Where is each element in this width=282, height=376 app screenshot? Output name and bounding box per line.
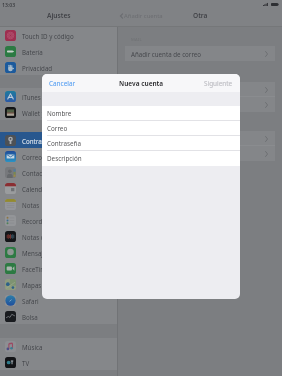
button[interactable]: Bolsa xyxy=(0,308,117,324)
button[interactable]: Contactos xyxy=(0,164,117,180)
staticText: Contactos xyxy=(22,169,52,177)
staticText: Ajustes xyxy=(47,11,71,20)
button[interactable]: Añadir cuenta de correo xyxy=(125,46,275,61)
staticText: Recordatorios xyxy=(22,217,63,225)
staticText: Añadir cuenta xyxy=(124,12,163,20)
button[interactable]: Mapas xyxy=(0,276,117,292)
button[interactable]: Música xyxy=(0,338,117,354)
staticText: Contraseña xyxy=(47,139,81,148)
staticText: Touch ID y código xyxy=(22,32,74,40)
button[interactable]: Safari xyxy=(0,292,117,308)
button[interactable]: Privacidad xyxy=(0,59,117,75)
staticText: Wallet y Apple Pay xyxy=(22,109,76,117)
staticText: Correo xyxy=(47,124,68,133)
button[interactable]: Descripción xyxy=(42,151,240,166)
staticText: Privacidad xyxy=(22,64,53,72)
staticText: FaceTime xyxy=(22,265,50,273)
staticText: Descripción xyxy=(47,154,82,163)
staticText: Nombre xyxy=(47,109,72,118)
staticText: Calendario xyxy=(22,185,54,193)
button[interactable]: Contraseña xyxy=(42,136,240,151)
staticText: Otra xyxy=(193,11,208,20)
button[interactable]: Siguiente xyxy=(197,75,240,92)
staticText: Añadir cuenta xyxy=(131,135,172,143)
button[interactable]: Cancelar xyxy=(42,75,83,92)
button[interactable]: Batería xyxy=(0,43,117,59)
staticText: Añadir cuenta xyxy=(131,150,172,158)
button[interactable]: Touch ID y código xyxy=(0,27,117,43)
staticText: Mensajes xyxy=(22,249,50,257)
staticText: Siguiente xyxy=(204,79,233,88)
button[interactable]: Mensajes xyxy=(0,244,117,260)
button[interactable]: Añadir cuenta xyxy=(125,131,275,146)
button[interactable]: Correo xyxy=(0,148,117,164)
button[interactable]: Notas xyxy=(0,196,117,212)
button[interactable]: TV xyxy=(0,354,117,370)
button[interactable]: Añadir cuenta xyxy=(125,146,275,161)
button[interactable]: Contraseñas y cuentas xyxy=(0,132,117,148)
staticText: Contraseñas y cuentas xyxy=(22,137,88,145)
button[interactable]: Correo xyxy=(42,121,240,136)
staticText: Notas de voz xyxy=(22,233,60,241)
button[interactable]: Notas de voz xyxy=(0,228,117,244)
staticText: Bolsa xyxy=(22,313,38,321)
button[interactable]: Calendario xyxy=(0,180,117,196)
staticText: CONTACTOS xyxy=(131,73,157,79)
button[interactable]: Wallet y Apple Pay xyxy=(0,104,117,120)
staticText: MAIL xyxy=(131,37,142,43)
button[interactable]: Back xyxy=(120,12,163,20)
button[interactable]: Añadir cuenta xyxy=(125,97,275,112)
staticText: TV xyxy=(22,359,30,367)
staticText: 13:03 xyxy=(2,1,16,8)
button[interactable]: Recordatorios xyxy=(0,212,117,228)
staticText: Correo xyxy=(22,153,42,161)
staticText: Notas xyxy=(22,201,40,209)
button[interactable]: Nombre xyxy=(42,106,240,121)
button[interactable]: iTunes Store y App Store xyxy=(0,88,117,104)
staticText: Cancelar xyxy=(49,79,76,88)
staticText: iTunes Store y App Store xyxy=(22,93,93,101)
staticText: Nueva cuenta xyxy=(119,79,164,88)
button[interactable]: FaceTime xyxy=(0,260,117,276)
staticText: Mapas xyxy=(22,281,42,289)
staticText: Añadir cuenta de correo xyxy=(131,50,202,58)
staticText: Música xyxy=(22,343,43,351)
button[interactable]: Añadir cuenta xyxy=(125,82,275,97)
staticText: Batería xyxy=(22,48,43,56)
staticText: Añadir cuenta xyxy=(131,101,172,109)
staticText: Safari xyxy=(22,297,39,305)
staticText: Añadir cuenta xyxy=(131,86,172,94)
